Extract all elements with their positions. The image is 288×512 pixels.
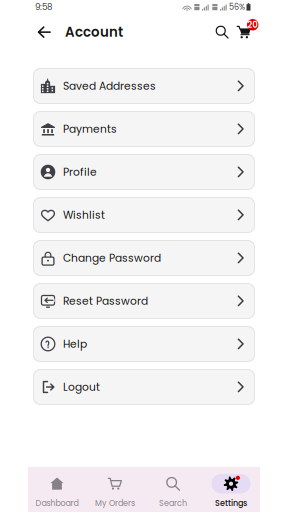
staticText: Search (159, 497, 187, 509)
button[interactable]: Search (211, 21, 233, 43)
button[interactable]: Dashboard (28, 474, 86, 509)
button[interactable]: Payments (33, 111, 255, 147)
button[interactable]: Logout (33, 369, 255, 405)
button[interactable]: Reset Password (33, 283, 255, 319)
staticText: Dashboard (35, 497, 78, 509)
staticText: Settings (215, 497, 247, 509)
staticText: Payments (63, 121, 117, 136)
button[interactable]: Settings (202, 474, 260, 509)
staticText: Profile (63, 164, 97, 179)
button[interactable]: Profile (33, 154, 255, 190)
button[interactable]: Saved Addresses (33, 68, 255, 104)
staticText: Saved Addresses (63, 78, 156, 93)
staticText: 20 (247, 19, 258, 31)
button[interactable]: Wishlist (33, 197, 255, 233)
staticText: My Orders (95, 497, 135, 509)
staticText: Logout (63, 379, 100, 394)
button[interactable]: Back (33, 21, 55, 43)
button[interactable]: Cart, 20 items (233, 21, 255, 43)
staticText: Account (65, 23, 123, 41)
button[interactable]: My Orders (86, 474, 144, 509)
staticText: Help (63, 336, 87, 351)
button[interactable]: Change Password (33, 240, 255, 276)
staticText: 56% (229, 1, 245, 13)
button[interactable]: Search (144, 474, 202, 509)
staticText: Change Password (63, 250, 161, 265)
staticText: 9:58 (35, 1, 52, 13)
button[interactable]: Help (33, 326, 255, 362)
staticText: Wishlist (63, 207, 105, 222)
staticText: Reset Password (63, 293, 148, 308)
